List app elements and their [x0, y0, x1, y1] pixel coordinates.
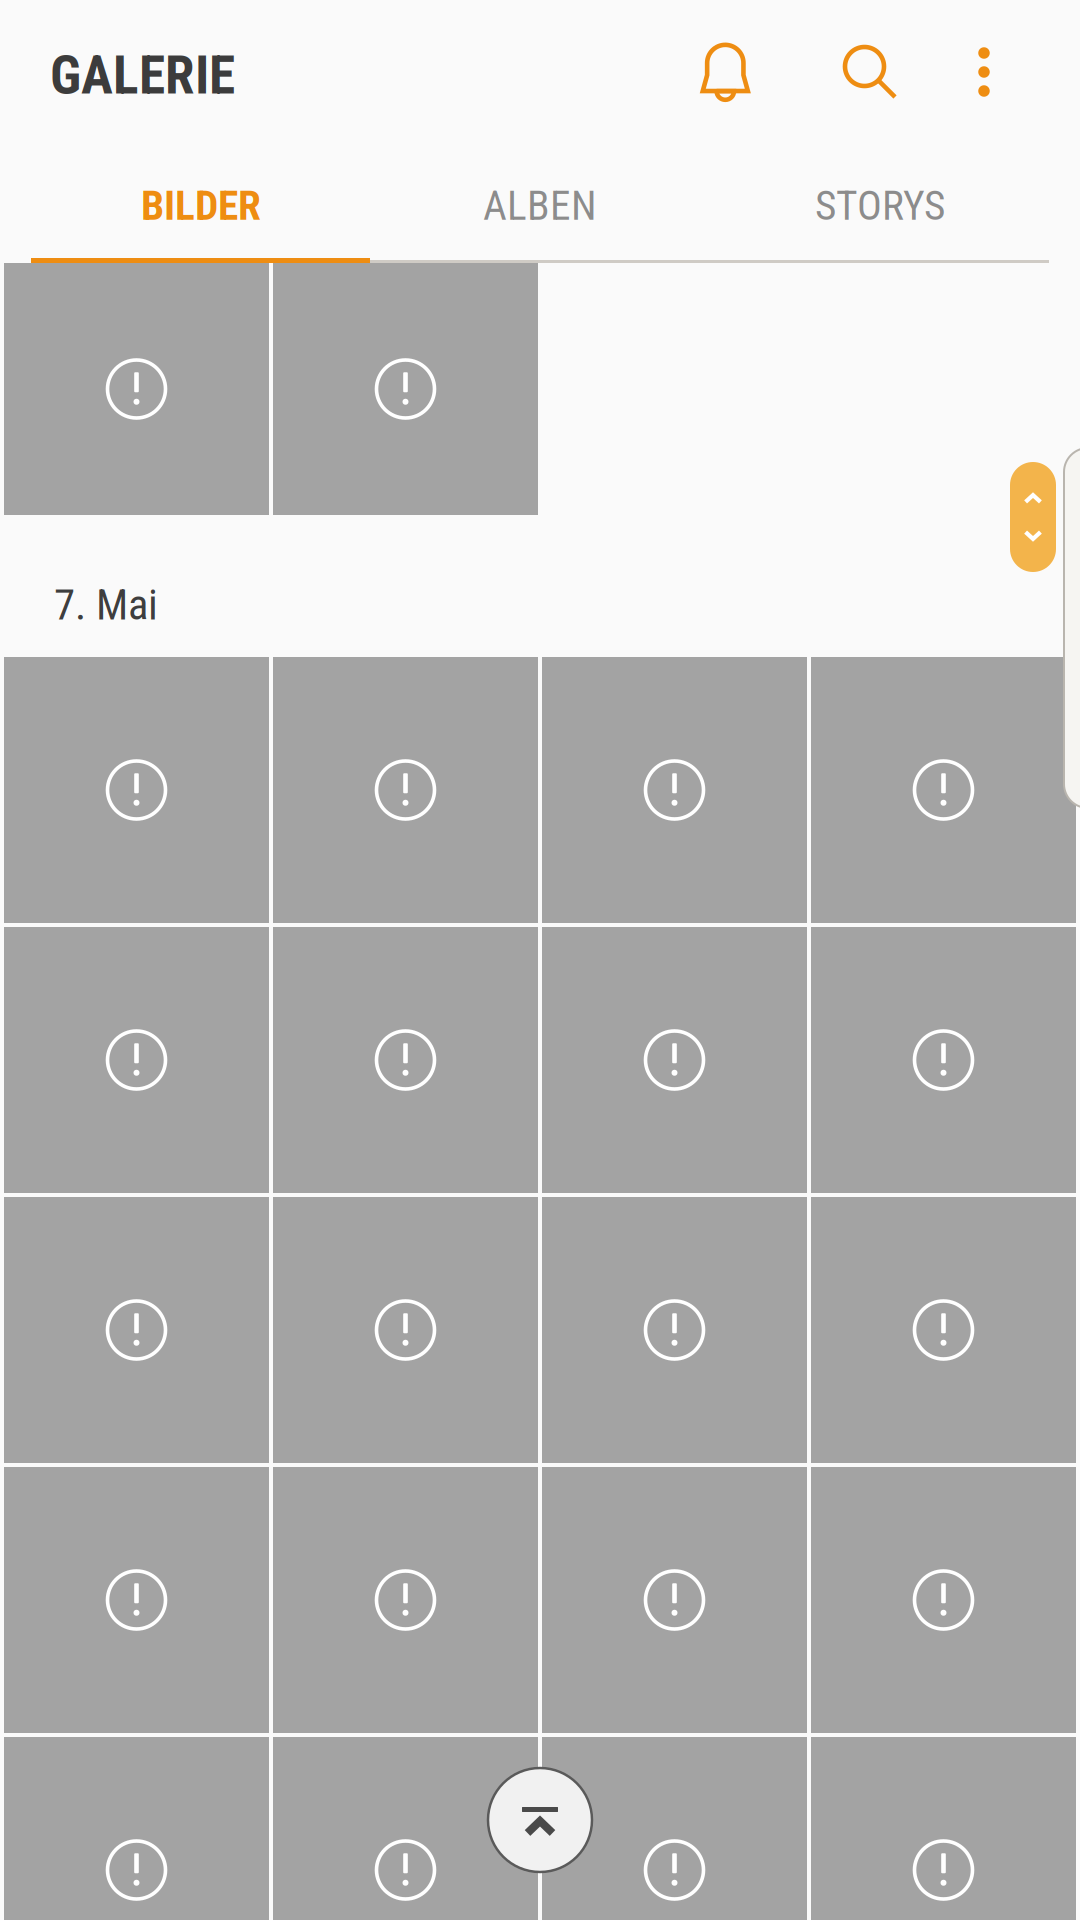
- button[interactable]: Foto: [273, 1737, 538, 1920]
- button[interactable]: Foto: [542, 657, 807, 923]
- button[interactable]: Foto: [273, 1197, 538, 1463]
- staticText: ALBEN: [483, 181, 597, 230]
- button[interactable]: Foto: [273, 927, 538, 1193]
- button[interactable]: Nach oben scrollen: [488, 1768, 592, 1872]
- button[interactable]: Foto: [542, 1467, 807, 1733]
- button[interactable]: Foto: [4, 1467, 269, 1733]
- button[interactable]: Foto: [811, 1197, 1076, 1463]
- staticText: GALERIE: [50, 44, 235, 106]
- button[interactable]: STORYS: [710, 153, 1050, 258]
- button[interactable]: Foto: [4, 263, 269, 515]
- button[interactable]: Foto: [273, 657, 538, 923]
- button[interactable]: Benachrichtigungen: [700, 41, 755, 107]
- button[interactable]: Foto: [4, 657, 269, 923]
- button[interactable]: Foto: [811, 1467, 1076, 1733]
- button[interactable]: Foto: [542, 1737, 807, 1920]
- button[interactable]: Foto: [811, 1737, 1076, 1920]
- button[interactable]: Foto: [273, 1467, 538, 1733]
- button[interactable]: Foto: [4, 927, 269, 1193]
- button[interactable]: Foto: [542, 927, 807, 1193]
- button[interactable]: Suchen: [842, 44, 898, 100]
- button[interactable]: Foto: [811, 657, 1076, 923]
- button[interactable]: Foto: [4, 1197, 269, 1463]
- button[interactable]: Foto: [273, 263, 538, 515]
- staticText: BILDER: [141, 181, 261, 230]
- button[interactable]: Weitere Optionen: [978, 48, 990, 96]
- button[interactable]: Foto: [542, 1197, 807, 1463]
- button[interactable]: Schnell scrollen: [1010, 462, 1056, 572]
- button[interactable]: BILDER: [31, 153, 371, 258]
- staticText: STORYS: [815, 181, 945, 230]
- button[interactable]: ALBEN: [370, 153, 710, 258]
- staticText: 7. Mai: [54, 580, 158, 630]
- button[interactable]: Foto: [4, 1737, 269, 1920]
- button[interactable]: Foto: [811, 927, 1076, 1193]
